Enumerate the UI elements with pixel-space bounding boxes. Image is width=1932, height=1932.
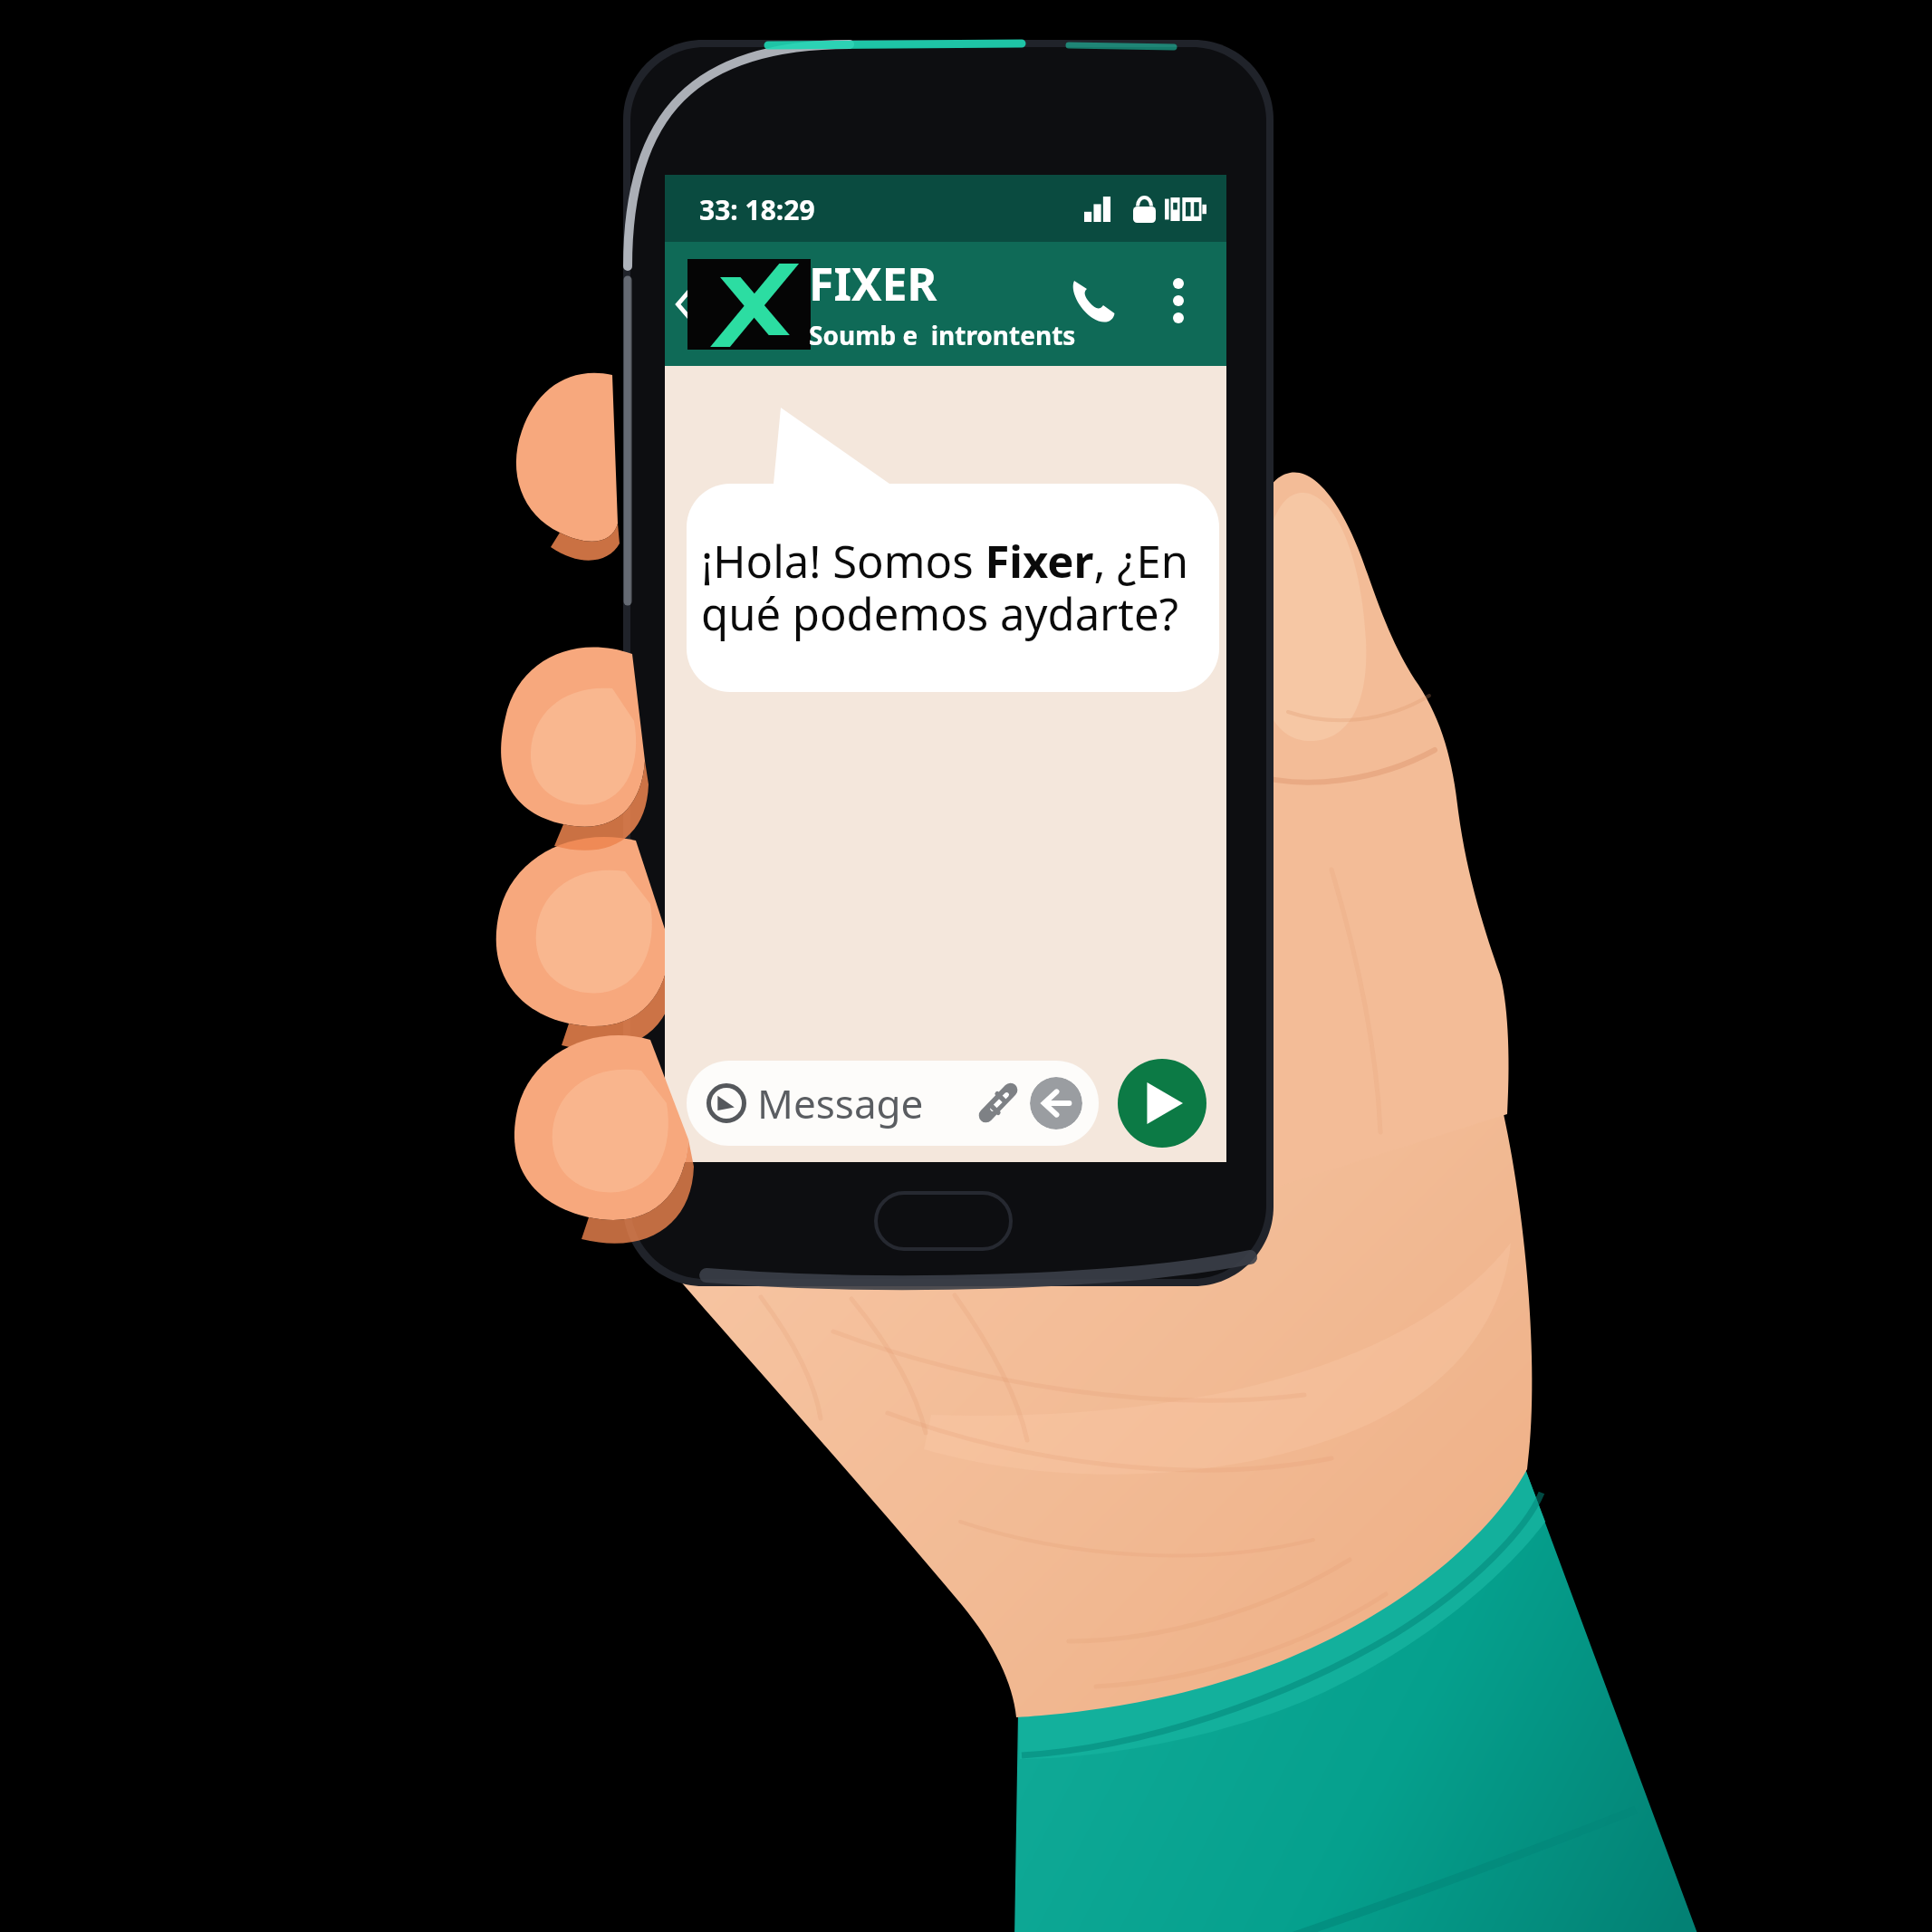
staticText: ¡Hola! Somos Fixer, ¿En qué podemos ayda…	[701, 531, 1197, 643]
staticText: 33: 18:29	[699, 191, 815, 228]
button[interactable]: Back	[1030, 1077, 1082, 1129]
staticText: Message	[757, 1076, 924, 1130]
button[interactable]: Send	[1118, 1059, 1206, 1148]
button[interactable]: FIXER contact	[687, 259, 811, 350]
button[interactable]: Call	[1056, 264, 1129, 337]
button[interactable]: More options	[1150, 273, 1206, 329]
button[interactable]: Message	[687, 1061, 1099, 1146]
button[interactable]: Back	[667, 277, 703, 332]
staticText: FIXER	[809, 253, 937, 314]
staticText: Soumb e introntents	[809, 318, 1076, 352]
button[interactable]: Attach	[970, 1076, 1024, 1130]
